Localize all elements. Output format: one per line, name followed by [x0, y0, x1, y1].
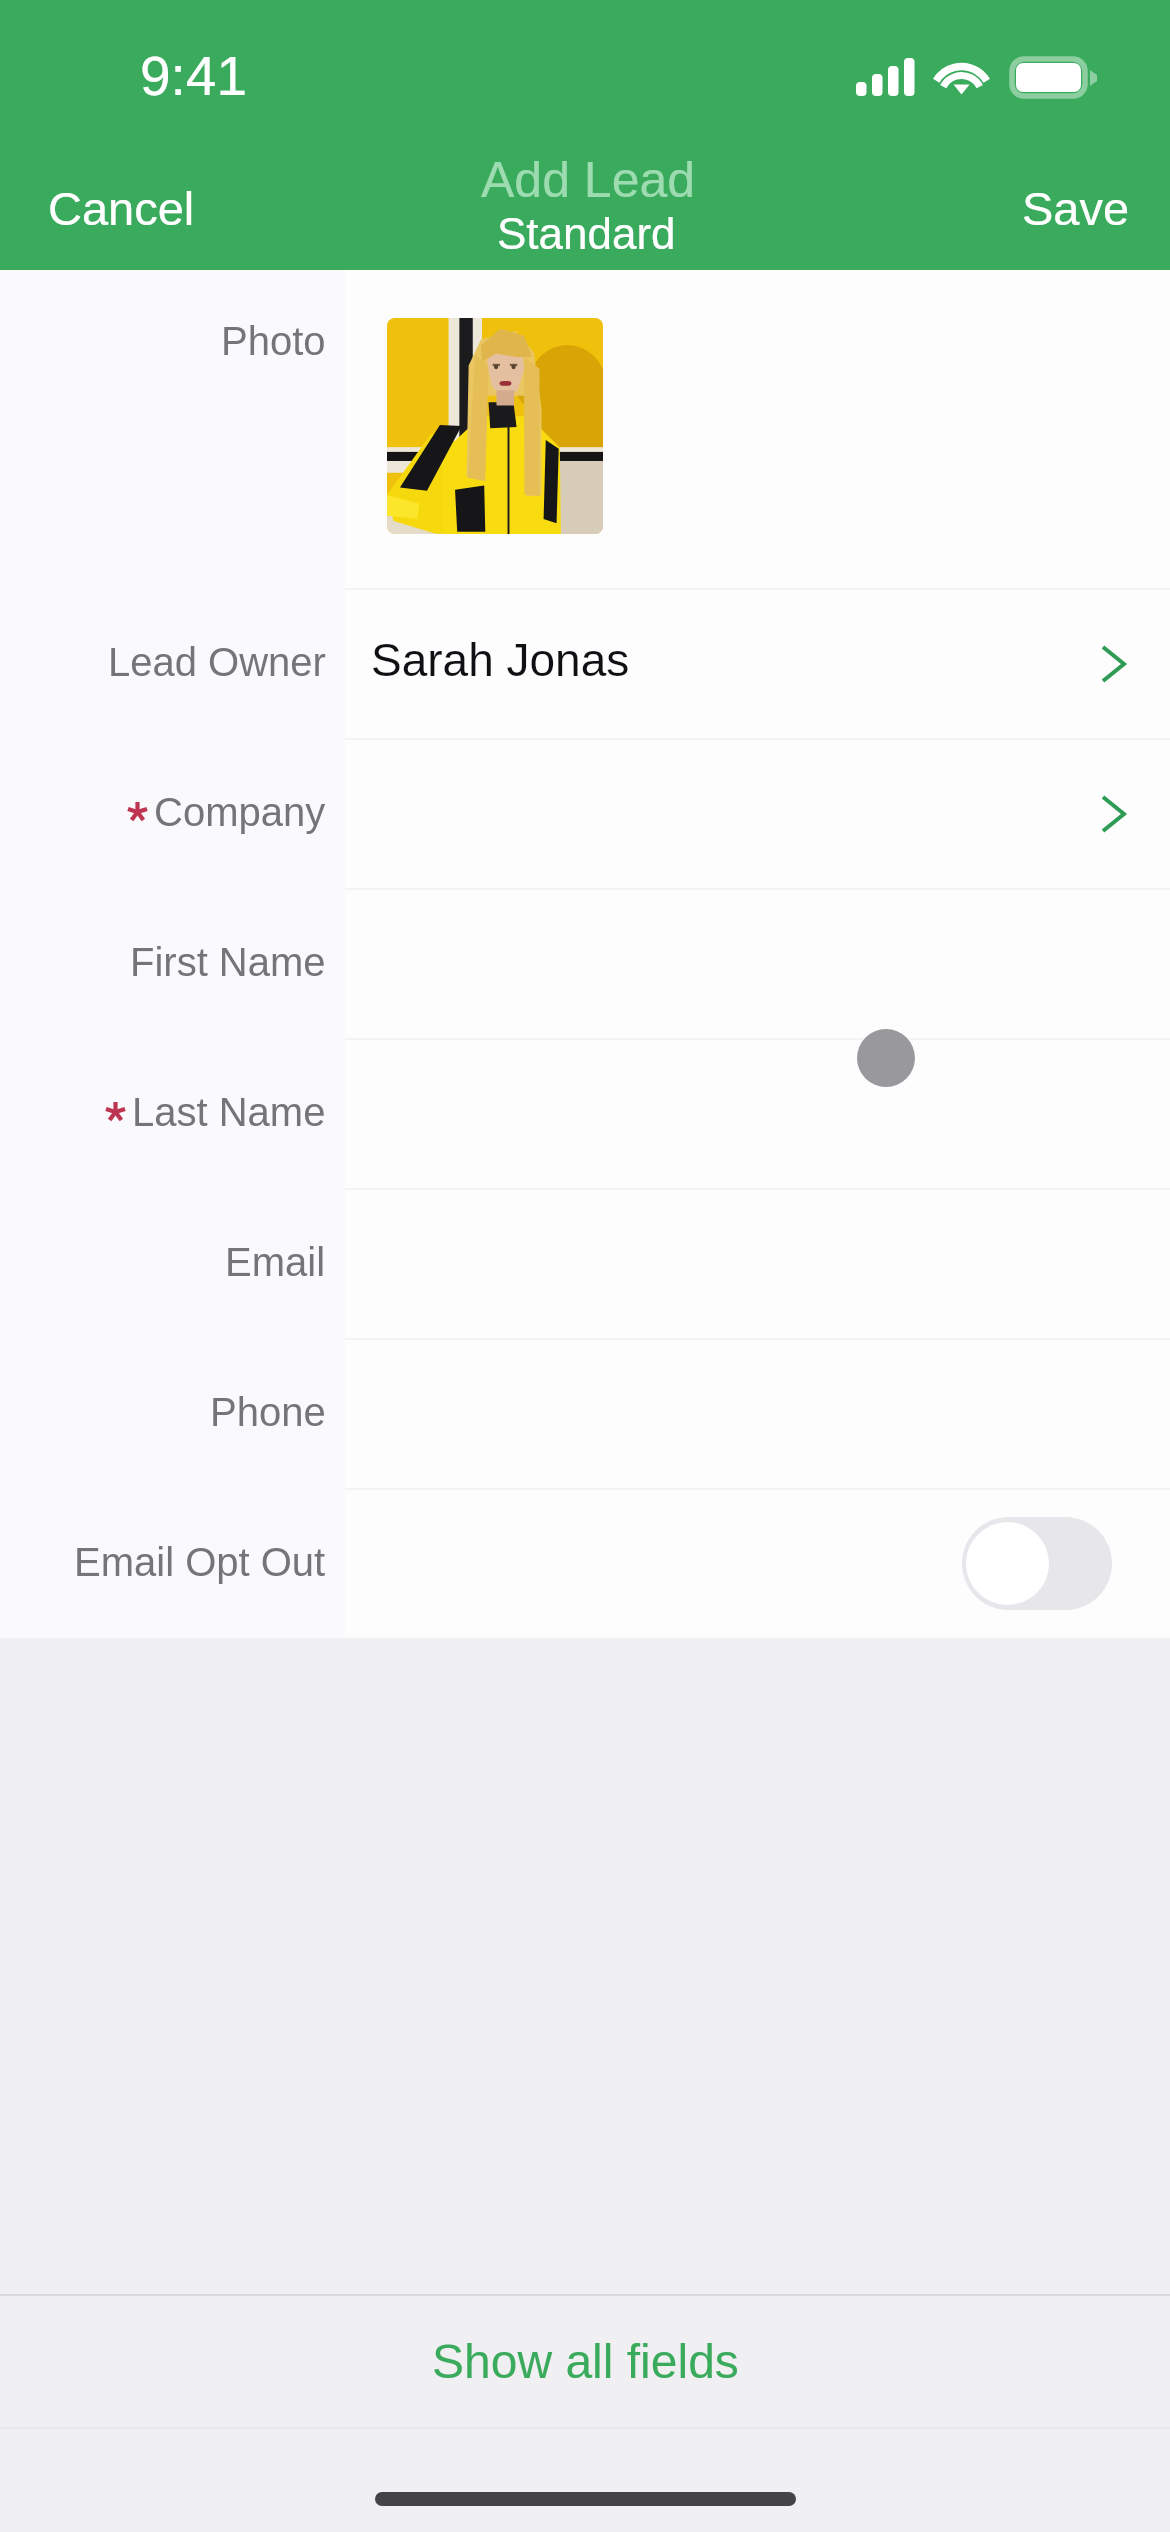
staticText: Photo: [221, 319, 326, 364]
staticText: Lead Owner: [108, 640, 326, 685]
staticText: Email Opt Out: [74, 1540, 326, 1585]
button[interactable]: Lead photo: [387, 318, 603, 534]
button[interactable]: [0, 1338, 1170, 1488]
button[interactable]: Cancel: [8, 158, 235, 259]
staticText: Save: [1022, 182, 1130, 235]
staticText: Phone: [210, 1390, 326, 1435]
staticText: Company: [154, 790, 326, 835]
staticText: Sarah Jonas: [371, 634, 630, 685]
button[interactable]: Show all fields: [0, 2296, 1170, 2427]
button[interactable]: [0, 1488, 1170, 1638]
button[interactable]: Save: [982, 158, 1170, 259]
staticText: Add Lead: [481, 152, 696, 208]
button[interactable]: [0, 888, 1170, 1038]
button[interactable]: [0, 1038, 1170, 1188]
staticText: Last Name: [132, 1090, 326, 1135]
button[interactable]: [0, 1188, 1170, 1338]
staticText: Standard: [497, 209, 676, 258]
staticText: Email: [225, 1240, 326, 1285]
staticText: Cancel: [48, 182, 195, 235]
button[interactable]: Choose Lead Owner: [1095, 638, 1145, 688]
button[interactable]: [0, 588, 1170, 738]
button[interactable]: [0, 738, 1170, 888]
staticText: Show all fields: [432, 2335, 739, 2389]
button[interactable]: Choose Company: [1095, 788, 1145, 838]
staticText: 9:41: [140, 45, 248, 106]
button[interactable]: Email Opt Out toggle, off: [962, 1517, 1112, 1610]
staticText: First Name: [130, 940, 326, 985]
